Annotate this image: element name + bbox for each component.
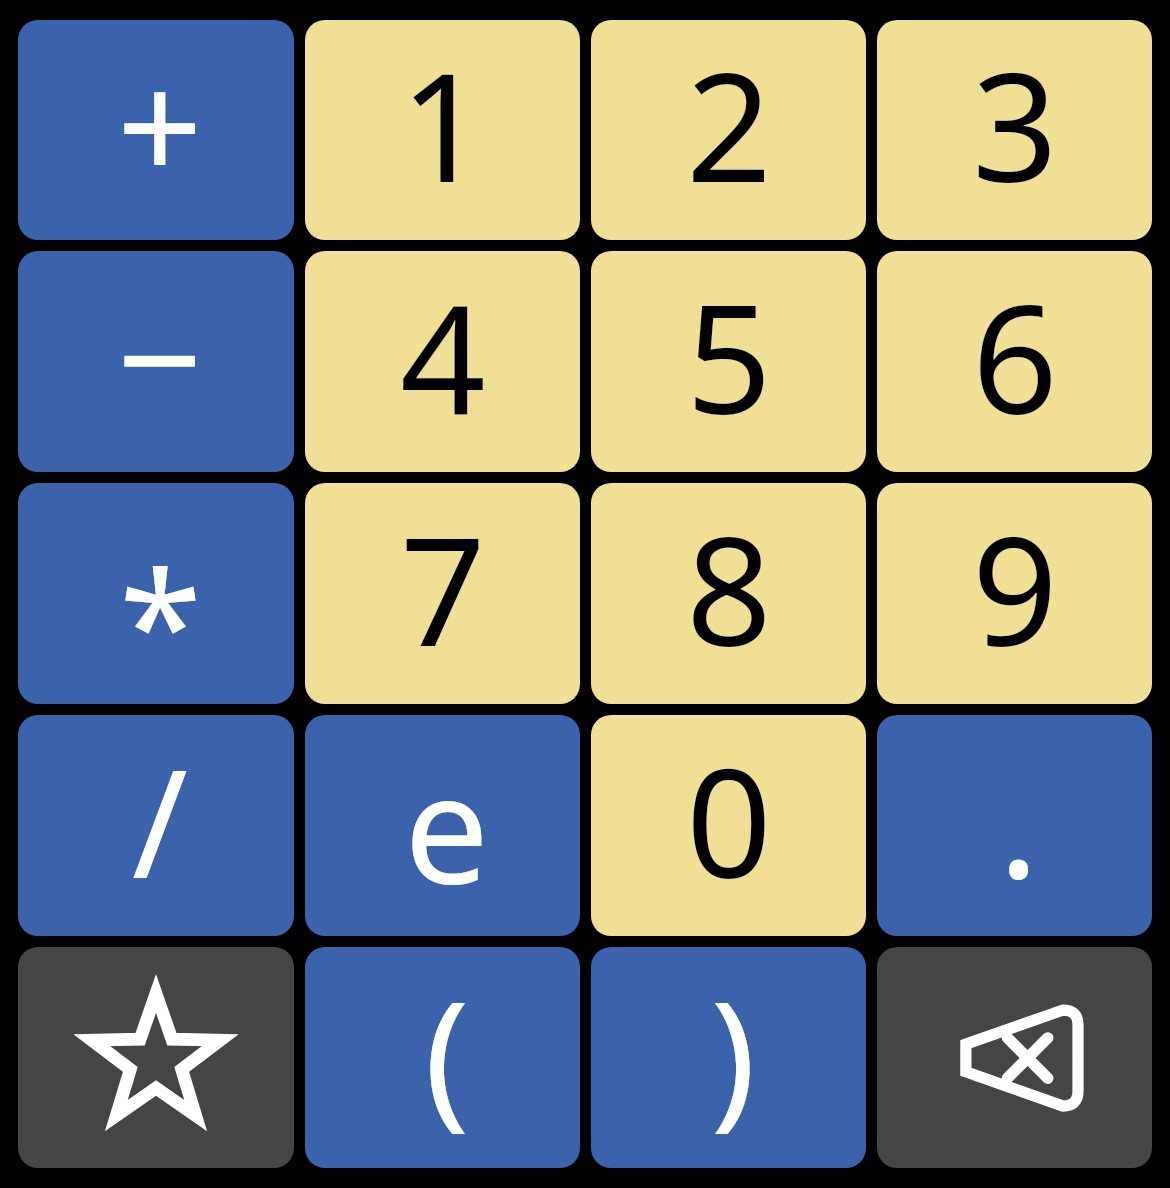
staticText: 7: [400, 486, 486, 690]
button[interactable]: *: [18, 483, 294, 704]
staticText: 2: [686, 22, 772, 226]
button[interactable]: 1: [305, 20, 580, 240]
button[interactable]: +: [18, 20, 294, 240]
staticText: −: [117, 254, 203, 458]
staticText: 4: [400, 254, 486, 458]
button[interactable]: 4: [305, 251, 580, 472]
button[interactable]: 5: [591, 251, 866, 472]
button[interactable]: 3: [877, 20, 1152, 240]
staticText: *: [119, 520, 202, 704]
button[interactable]: 7: [305, 483, 580, 704]
staticText: ): [710, 950, 756, 1154]
staticText: +: [117, 22, 203, 226]
staticText: 9: [972, 486, 1058, 690]
staticText: 6: [972, 254, 1058, 458]
staticText: 1: [400, 22, 486, 226]
button[interactable]: ): [591, 947, 866, 1168]
staticText: 0: [686, 718, 772, 922]
button[interactable]: −: [18, 251, 294, 472]
button[interactable]: 9: [877, 483, 1152, 704]
staticText: 3: [972, 22, 1058, 226]
staticText: 8: [686, 486, 772, 690]
button[interactable]: 0: [591, 715, 866, 936]
button[interactable]: /: [18, 715, 294, 936]
button[interactable]: 8: [591, 483, 866, 704]
staticText: e: [404, 724, 489, 928]
button[interactable]: e: [305, 715, 580, 936]
staticText: 5: [686, 254, 772, 458]
button[interactable]: 6: [877, 251, 1152, 472]
button[interactable]: Backspace: [877, 947, 1152, 1168]
button[interactable]: (: [305, 947, 580, 1168]
staticText: (: [424, 950, 470, 1154]
button[interactable]: Favorites: [18, 947, 294, 1168]
staticText: .: [998, 718, 1039, 922]
button[interactable]: 2: [591, 20, 866, 240]
staticText: /: [132, 718, 188, 922]
button[interactable]: .: [877, 715, 1152, 936]
